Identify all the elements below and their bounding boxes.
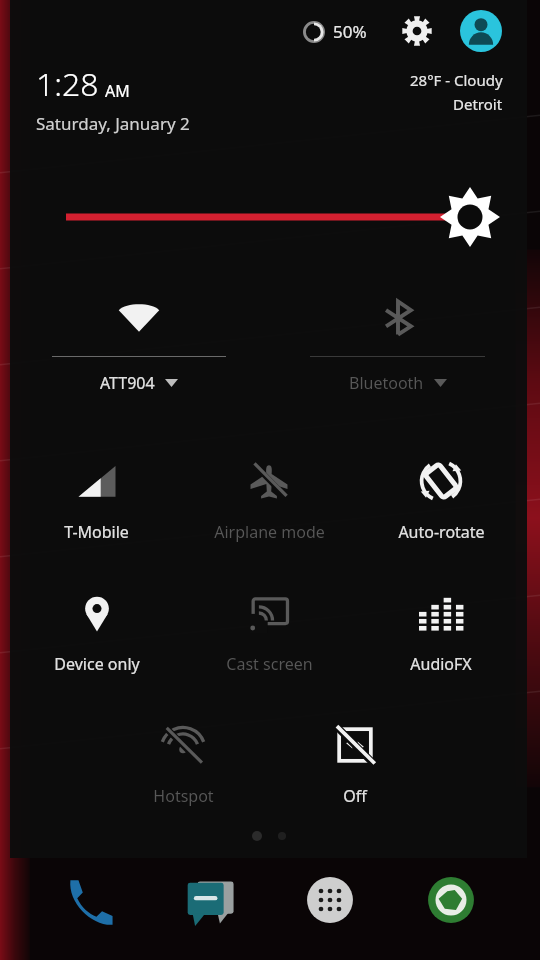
button[interactable]: ATT904 bbox=[10, 279, 268, 409]
button[interactable]: Off bbox=[269, 699, 441, 831]
button[interactable]: Airplane mode bbox=[183, 435, 355, 567]
staticText: Off bbox=[343, 785, 367, 807]
staticText: ATT904 bbox=[100, 372, 155, 394]
staticText: Hotspot bbox=[153, 785, 214, 807]
button[interactable]: User profile bbox=[459, 9, 503, 53]
button[interactable]: Device only bbox=[10, 567, 183, 699]
staticText: Auto-rotate bbox=[398, 521, 485, 543]
button[interactable]: Browser bbox=[420, 869, 482, 931]
staticText: Detroit bbox=[453, 94, 503, 114]
staticText: AudioFX bbox=[410, 653, 472, 675]
staticText: Airplane mode bbox=[214, 521, 325, 543]
button[interactable]: Hotspot bbox=[97, 699, 269, 831]
staticText: T-Mobile bbox=[64, 521, 129, 543]
button[interactable]: Brightness bbox=[10, 189, 527, 245]
staticText: Cast screen bbox=[226, 653, 313, 675]
button[interactable]: 1:28 bbox=[36, 62, 410, 135]
button[interactable]: Messaging bbox=[179, 869, 241, 931]
button[interactable]: Auto-rotate bbox=[355, 435, 527, 567]
button[interactable]: T-Mobile bbox=[10, 435, 183, 567]
button[interactable]: Phone bbox=[58, 869, 120, 931]
staticText: 50% bbox=[333, 20, 367, 43]
staticText: AM bbox=[105, 80, 130, 102]
staticText: Bluetooth bbox=[349, 372, 424, 394]
button[interactable]: AudioFX bbox=[355, 567, 527, 699]
button[interactable]: Bluetooth bbox=[268, 279, 527, 409]
staticText: 1:28 bbox=[36, 62, 99, 106]
staticText: Device only bbox=[54, 653, 140, 675]
staticText: 28°F - Cloudy bbox=[410, 70, 503, 90]
button[interactable]: 28°F - Cloudy bbox=[410, 62, 503, 114]
button[interactable]: Apps bbox=[299, 869, 361, 931]
button[interactable]: Cast screen bbox=[183, 567, 355, 699]
staticText: Saturday, January 2 bbox=[36, 112, 190, 135]
button[interactable]: Settings bbox=[397, 11, 437, 51]
button[interactable]: 50% bbox=[299, 20, 371, 43]
